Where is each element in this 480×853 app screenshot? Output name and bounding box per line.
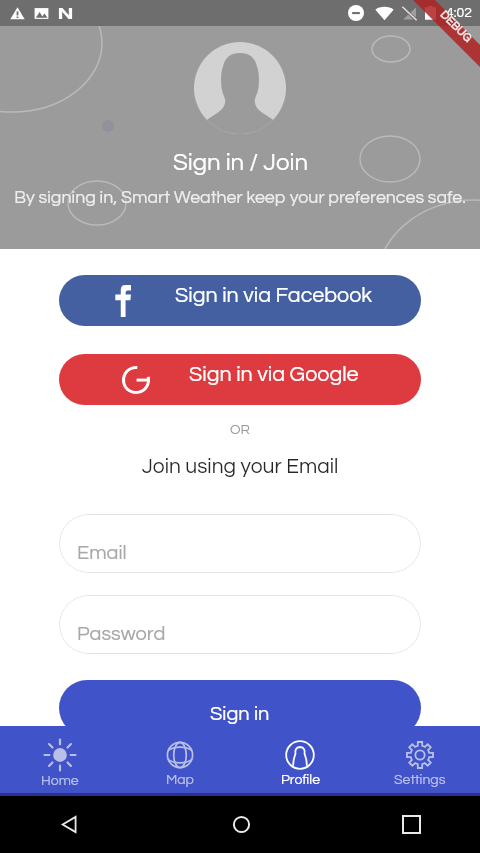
- staticText: Profile: [281, 773, 320, 787]
- staticText: Map: [166, 773, 194, 787]
- staticText: OR: [0, 423, 480, 437]
- staticText: Sign in: [210, 704, 270, 725]
- staticText: Sign in via Facebook: [175, 284, 373, 306]
- other: Home: [232, 815, 251, 834]
- button[interactable]: Home: [0, 732, 120, 788]
- button[interactable]: Settings: [360, 733, 480, 787]
- staticText: 4:02: [446, 6, 472, 20]
- staticText: By signing in, Smart Weather keep your p…: [14, 188, 466, 206]
- staticText: Email: [77, 543, 127, 564]
- other: Recents: [403, 816, 420, 833]
- staticText: Password: [77, 624, 166, 645]
- staticText: DEBUG: [438, 9, 474, 45]
- button[interactable]: Sign in via Google: [59, 354, 421, 405]
- staticText: Join using your Email: [0, 456, 480, 478]
- staticText: Home: [41, 774, 79, 788]
- button[interactable]: Email: [59, 514, 421, 573]
- button[interactable]: Profile: [240, 733, 360, 787]
- button[interactable]: Sign in: [59, 680, 421, 736]
- button[interactable]: Map: [120, 733, 240, 787]
- staticText: Sign in via Google: [189, 363, 359, 385]
- button[interactable]: Password: [59, 595, 421, 654]
- staticText: Settings: [394, 773, 446, 787]
- button[interactable]: Sign in via Facebook: [59, 275, 421, 326]
- staticText: Sign in / Join: [173, 150, 308, 175]
- other: Back: [60, 815, 79, 834]
